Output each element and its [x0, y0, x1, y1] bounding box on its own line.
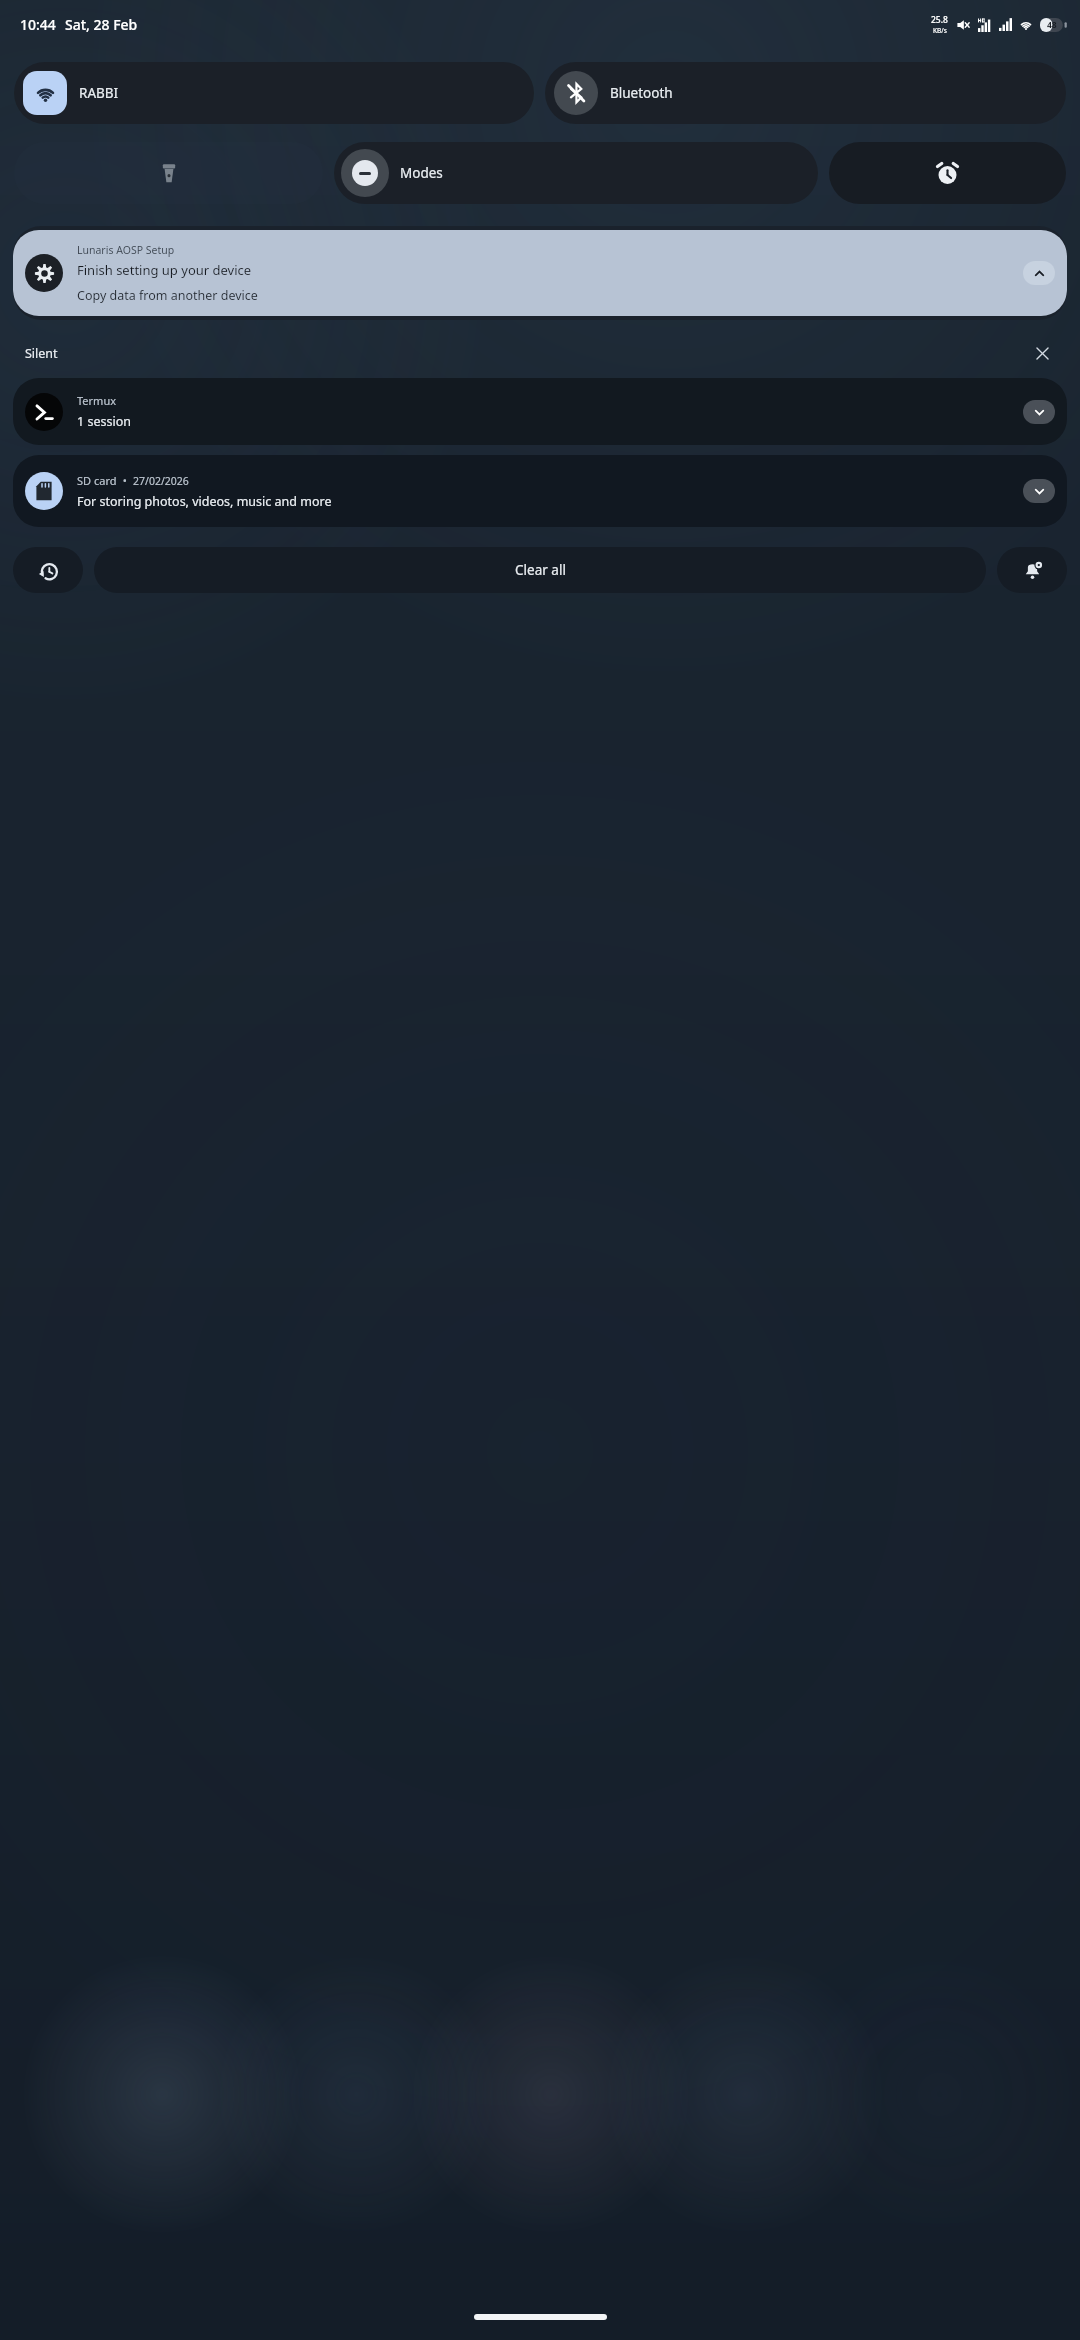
button[interactable]: Alarm	[829, 142, 1066, 204]
button[interactable]: Flashlight	[14, 142, 323, 204]
staticText: Sat, 28 Feb	[65, 15, 138, 34]
staticText: Silent	[25, 345, 58, 362]
staticText: KB/s	[933, 26, 947, 35]
staticText: RABBI	[79, 84, 119, 102]
staticText: 25.8	[931, 14, 948, 26]
button[interactable]: Lunaris AOSP Setup	[13, 230, 1067, 316]
button[interactable]: Notification history	[13, 547, 83, 593]
staticText: SD card	[77, 473, 117, 488]
button[interactable]: Expand	[1023, 479, 1055, 503]
staticText: Finish setting up your device	[77, 261, 252, 279]
staticText: Bluetooth	[610, 84, 673, 102]
staticText: 27/02/2026	[133, 474, 189, 488]
staticText: Clear all	[515, 561, 566, 579]
staticText: 10:44	[20, 15, 56, 34]
button[interactable]: RABBI	[14, 62, 534, 124]
button[interactable]: Clear all	[94, 547, 986, 593]
staticText: Copy data from another device	[77, 287, 258, 304]
staticText: Lunaris AOSP Setup	[77, 243, 175, 257]
staticText: For storing photos, videos, music and mo…	[77, 493, 332, 510]
button[interactable]: Termux	[13, 378, 1067, 445]
button[interactable]: Bluetooth	[545, 62, 1066, 124]
staticText: 48	[1047, 19, 1057, 31]
button[interactable]: Dismiss silent notifications	[1029, 340, 1055, 366]
button[interactable]: Modes	[334, 142, 818, 204]
button[interactable]: SD card	[13, 455, 1067, 527]
button[interactable]: Notification settings	[997, 547, 1067, 593]
staticText: 1 session	[77, 413, 131, 430]
button[interactable]: Expand	[1023, 400, 1055, 424]
staticText: Modes	[400, 164, 443, 182]
staticText: •	[117, 473, 133, 488]
staticText: Termux	[77, 393, 116, 408]
button[interactable]: Collapse	[1023, 261, 1055, 285]
